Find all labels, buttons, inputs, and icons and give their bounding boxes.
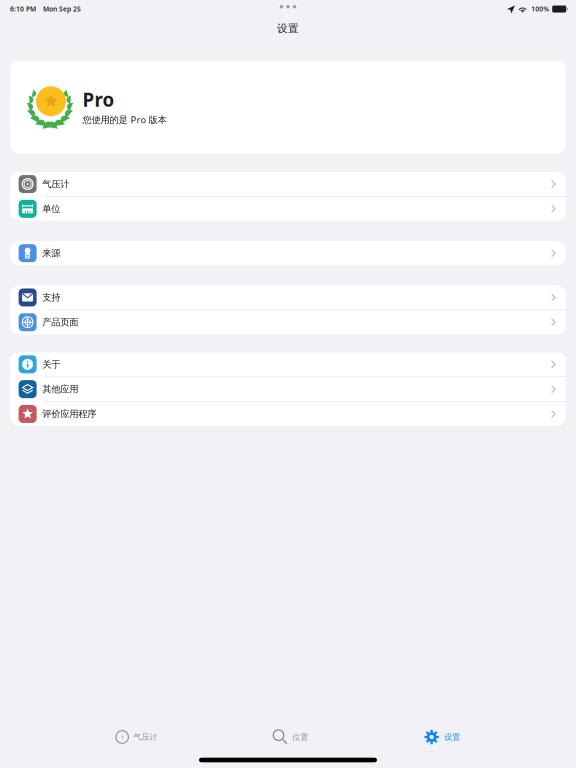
staticText: 100% [531,5,549,13]
button[interactable]: 气压计 [116,722,157,752]
staticText: 产品页面 [42,316,78,328]
staticText: 单位 [42,203,60,215]
staticText: 评价应用程序 [42,408,96,420]
staticText: 设置 [444,732,460,742]
button[interactable]: 支持 [10,285,566,309]
button[interactable]: 设置 [424,722,460,752]
button[interactable]: 位置 [273,722,308,752]
button[interactable]: 气压计 [10,172,566,196]
staticText: 设置 [277,22,299,35]
staticText: 您使用的是 Pro 版本 [82,113,166,126]
staticText: 支持 [42,292,60,303]
button[interactable]: 评价应用程序 [10,402,566,426]
staticText: 位置 [292,732,308,742]
button[interactable]: 关于 [10,352,566,376]
button[interactable]: 其他应用 [10,377,566,401]
staticText: 6:10 PM [10,5,36,13]
button[interactable]: 产品页面 [10,310,566,334]
button[interactable]: 单位 [10,197,566,221]
staticText: Mon Sep 25 [43,5,81,13]
button[interactable]: 来源 [10,241,566,265]
staticText: 来源 [42,247,60,259]
staticText: 关于 [42,359,60,370]
staticText: 气压计 [133,732,157,742]
staticText: 气压计 [42,178,69,190]
staticText: 其他应用 [42,383,78,395]
staticText: Pro [82,87,114,112]
